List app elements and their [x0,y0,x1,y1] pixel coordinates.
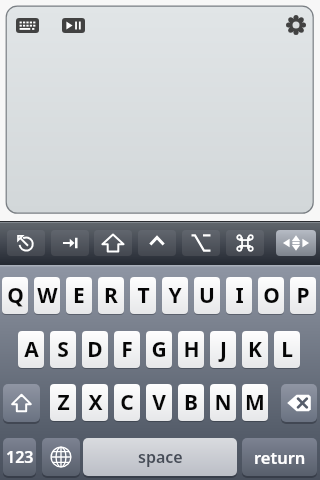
button[interactable]: G [146,331,172,368]
button[interactable]: V [146,384,172,421]
staticText: X [88,388,103,417]
staticText: M [245,388,265,417]
button[interactable]: Shift [3,384,40,422]
staticText: L [281,335,293,364]
staticText: W [37,281,58,310]
staticText: U [199,281,215,310]
button[interactable]: H [178,331,204,368]
button[interactable]: Option [182,230,220,256]
button[interactable]: Command [226,230,264,256]
button[interactable]: F [114,331,140,368]
staticText: O [263,281,280,310]
button[interactable]: O [258,277,284,314]
button[interactable]: Settings [286,15,306,35]
button[interactable]: E [66,277,92,314]
staticText: P [296,281,310,310]
button[interactable]: Numbers [3,438,36,476]
button[interactable]: J [210,331,236,368]
staticText: G [151,335,167,364]
button[interactable]: Text area [6,6,313,213]
staticText: B [184,388,198,417]
staticText: V [152,388,166,417]
button[interactable]: Return [242,438,317,476]
button[interactable]: A [18,331,44,368]
button[interactable]: Globe [42,438,80,476]
button[interactable]: space [83,438,237,476]
button[interactable]: T [130,277,156,314]
button[interactable]: U [194,277,220,314]
staticText: 123 [6,446,34,468]
staticText: space [138,446,183,468]
staticText: F [121,335,133,364]
staticText: R [104,281,118,310]
staticText: J [220,335,227,364]
button[interactable]: Arrow keys [276,230,316,256]
button[interactable]: C [114,384,140,421]
button[interactable]: K [242,331,268,368]
staticText: Y [168,281,182,310]
staticText: A [24,335,39,364]
button[interactable]: B [178,384,204,421]
button[interactable]: Y [162,277,188,314]
staticText: Q [7,281,24,310]
button[interactable]: Undo [7,230,45,256]
staticText: N [214,388,232,417]
staticText: D [87,335,103,364]
button[interactable]: Play pause [62,18,85,33]
button[interactable]: Shift [94,230,132,256]
staticText: return [254,446,306,468]
staticText: T [137,281,150,310]
button[interactable]: Tab [51,230,89,256]
button[interactable]: D [82,331,108,368]
button[interactable]: P [290,277,316,314]
button[interactable]: W [34,277,60,314]
staticText: Z [57,388,70,417]
button[interactable]: Keyboard [16,18,39,33]
button[interactable]: L [274,331,300,368]
button[interactable]: Backspace [281,384,317,422]
button[interactable]: M [242,384,268,421]
button[interactable]: S [50,331,76,368]
button[interactable]: Z [50,384,76,421]
button[interactable]: R [98,277,124,314]
staticText: I [235,281,244,310]
staticText: E [73,281,85,310]
staticText: C [120,388,134,417]
staticText: K [248,335,262,364]
button[interactable]: X [82,384,108,421]
button[interactable]: Control [138,230,176,256]
button[interactable]: I [226,277,252,314]
staticText: S [57,335,69,364]
button[interactable]: Q [2,277,28,314]
button[interactable]: N [210,384,236,421]
staticText: H [183,335,200,364]
